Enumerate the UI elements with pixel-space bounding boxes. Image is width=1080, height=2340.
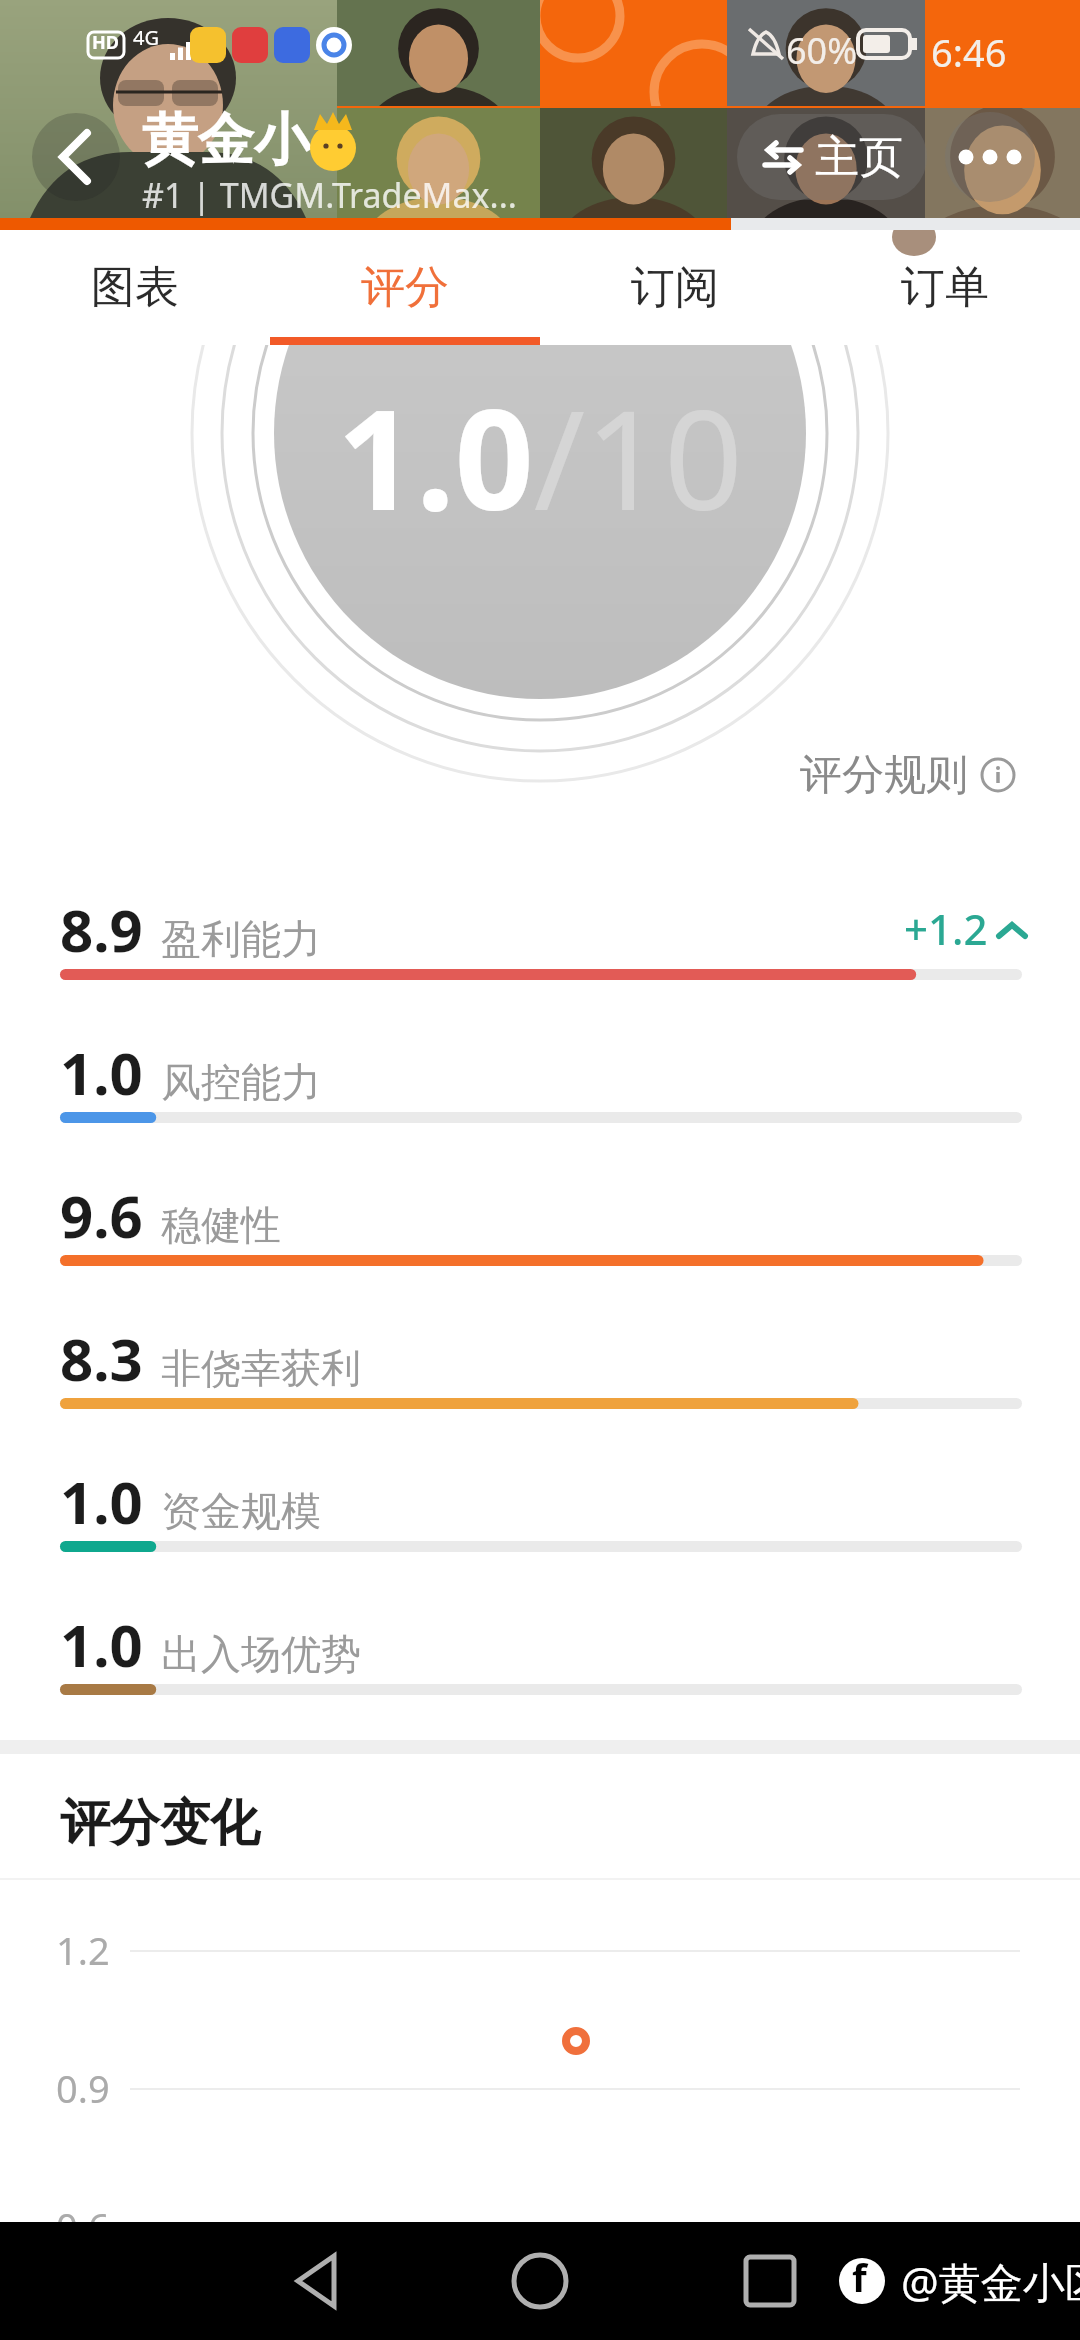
staticText: 图表 bbox=[91, 260, 179, 315]
button[interactable]: 评分 bbox=[270, 230, 540, 345]
button[interactable] bbox=[32, 113, 120, 201]
staticText: 风控能力 bbox=[161, 1057, 321, 1107]
staticText: +1.2 bbox=[904, 900, 988, 957]
staticText: 8.3 bbox=[60, 1319, 143, 1398]
staticText: 0.9 bbox=[56, 2062, 110, 2114]
staticText: 评分变化 bbox=[60, 1792, 260, 1855]
staticText: f bbox=[852, 2251, 867, 2303]
staticText: 主页 bbox=[815, 130, 903, 185]
button[interactable] bbox=[725, 2222, 815, 2340]
button[interactable]: 主页 bbox=[737, 114, 927, 200]
staticText: 0.6 bbox=[56, 2200, 110, 2252]
staticText: 9.6 bbox=[60, 1176, 143, 1255]
staticText: 6:46 bbox=[931, 26, 1007, 78]
staticText: 1.0/10 bbox=[0, 362, 1080, 550]
button[interactable] bbox=[495, 2222, 585, 2340]
button[interactable]: 订阅 bbox=[540, 230, 810, 345]
staticText: 1.0 bbox=[60, 1033, 143, 1112]
staticText: 60% bbox=[786, 26, 858, 75]
button[interactable] bbox=[945, 112, 1035, 202]
staticText: 订阅 bbox=[631, 260, 719, 315]
staticText: 盈利能力 bbox=[161, 914, 321, 964]
button[interactable]: 评分规则 bbox=[800, 745, 1016, 805]
staticText: 资金规模 bbox=[161, 1486, 321, 1536]
button[interactable] bbox=[270, 2222, 360, 2340]
staticText: 评分 bbox=[361, 260, 449, 315]
staticText: @黄金小区 bbox=[901, 2253, 1080, 2310]
staticText: 1.2 bbox=[56, 1924, 110, 1976]
staticText: HD bbox=[92, 30, 119, 55]
button[interactable]: 图表 bbox=[0, 230, 270, 345]
staticText: 出入场优势 bbox=[161, 1629, 361, 1679]
staticText: 1.0 bbox=[60, 1605, 143, 1684]
staticText: 非侥幸获利 bbox=[161, 1343, 361, 1393]
staticText: #1 | TMGM.TradeMax... bbox=[142, 172, 517, 218]
staticText: 4G bbox=[133, 24, 159, 51]
staticText: 评分规则 bbox=[800, 749, 968, 802]
staticText: 8.9 bbox=[60, 890, 143, 969]
button[interactable]: 订单 bbox=[810, 230, 1080, 345]
staticText: 黄金小 bbox=[142, 105, 310, 176]
staticText: 稳健性 bbox=[161, 1200, 281, 1250]
staticText: 1.0 bbox=[60, 1462, 143, 1541]
staticText: 订单 bbox=[901, 260, 989, 315]
